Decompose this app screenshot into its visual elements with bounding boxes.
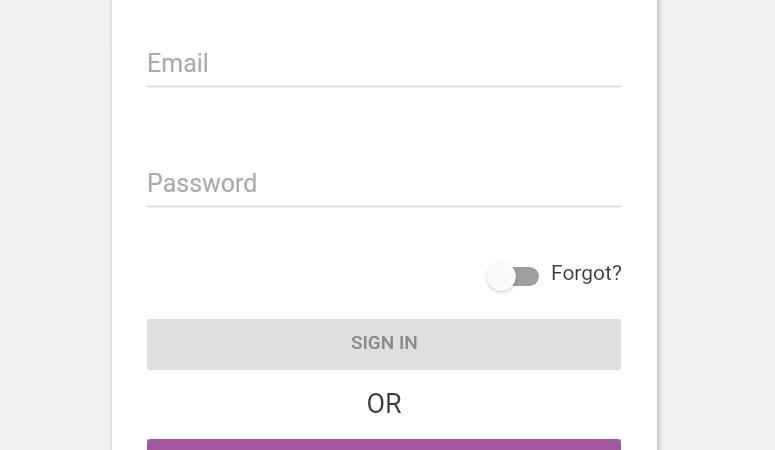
staticText: Password (147, 169, 258, 198)
button[interactable]: SIGN UP (147, 439, 621, 450)
button[interactable]: Remember me toggle (484, 258, 622, 294)
staticText: Forgot? (551, 261, 622, 286)
button[interactable]: Password input field (147, 164, 621, 209)
other: Remember me toggle (487, 262, 516, 291)
staticText: Email (147, 49, 209, 78)
staticText: SIGN IN (351, 331, 418, 353)
button[interactable]: SIGN IN (147, 319, 621, 370)
staticText: OR (366, 388, 402, 420)
button[interactable]: Email input field (147, 44, 621, 89)
